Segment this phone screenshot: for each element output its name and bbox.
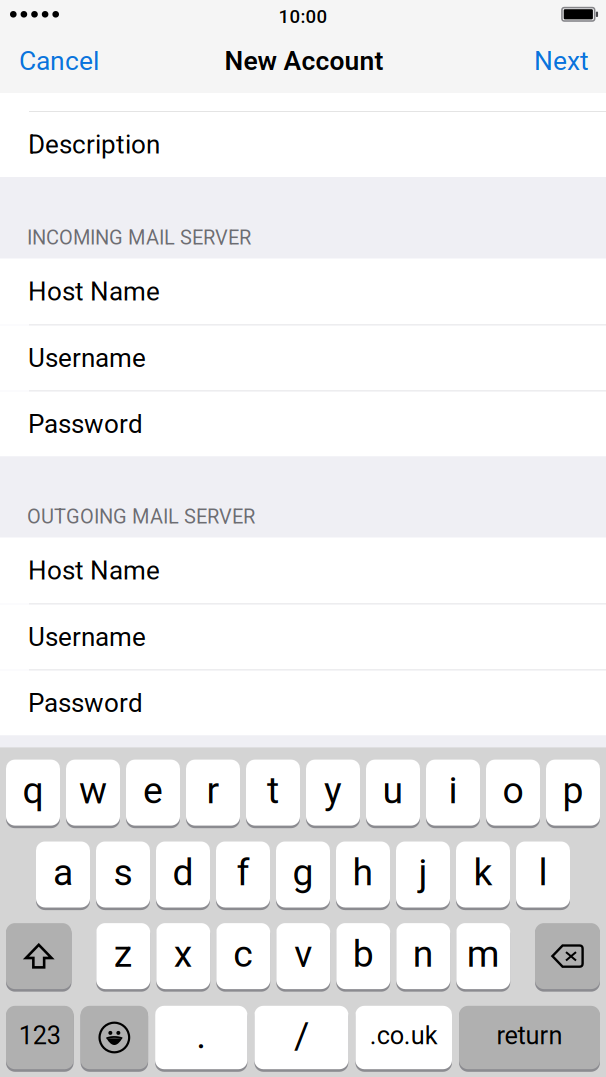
button[interactable]: .co.uk bbox=[355, 1005, 452, 1071]
button[interactable]: h bbox=[336, 841, 390, 909]
button[interactable]: g bbox=[276, 841, 330, 909]
button[interactable]: Host Name bbox=[0, 258, 606, 324]
button[interactable]: z bbox=[96, 922, 150, 991]
button[interactable]: Emoji bbox=[81, 1005, 148, 1071]
button[interactable]: k bbox=[456, 841, 510, 909]
staticText: .co.uk bbox=[370, 1021, 438, 1050]
staticText: x bbox=[174, 932, 193, 976]
staticText: k bbox=[473, 851, 492, 894]
staticText: f bbox=[236, 851, 249, 894]
staticText: t bbox=[267, 769, 279, 812]
staticText: h bbox=[352, 851, 373, 894]
button[interactable]: / bbox=[254, 1005, 348, 1071]
staticText: Host Name bbox=[28, 276, 160, 307]
staticText: o bbox=[502, 769, 523, 812]
button[interactable]: t bbox=[246, 759, 300, 827]
staticText: Username bbox=[28, 343, 146, 373]
staticText: INCOMING MAIL SERVER bbox=[27, 226, 251, 249]
staticText: p bbox=[562, 769, 583, 812]
staticText: Password bbox=[28, 688, 143, 718]
button[interactable]: Description bbox=[0, 111, 606, 177]
button[interactable]: Next bbox=[466, 33, 606, 93]
button[interactable]: f bbox=[216, 841, 270, 909]
staticText: Host Name bbox=[28, 555, 160, 586]
staticText: Description bbox=[28, 129, 160, 160]
staticText: OUTGOING MAIL SERVER bbox=[27, 505, 255, 528]
button[interactable]: p bbox=[546, 759, 600, 827]
staticText: s bbox=[113, 851, 132, 894]
button[interactable]: q bbox=[6, 759, 60, 827]
staticText: i bbox=[448, 769, 457, 812]
button[interactable]: Host Name bbox=[0, 537, 606, 603]
button[interactable]: return bbox=[459, 1005, 600, 1071]
staticText: Cancel bbox=[19, 45, 99, 76]
staticText: n bbox=[413, 932, 434, 976]
staticText: 10:00 bbox=[278, 6, 327, 27]
button[interactable]: w bbox=[66, 759, 120, 827]
button[interactable]: l bbox=[516, 841, 570, 909]
staticText: b bbox=[353, 932, 374, 976]
button[interactable]: m bbox=[456, 922, 510, 991]
button[interactable]: j bbox=[396, 841, 450, 909]
button[interactable]: d bbox=[156, 841, 210, 909]
staticText: / bbox=[294, 1014, 309, 1057]
button[interactable]: v bbox=[276, 922, 330, 991]
staticText: a bbox=[53, 851, 73, 894]
staticText: c bbox=[233, 932, 253, 976]
button[interactable]: x bbox=[156, 922, 210, 991]
button[interactable]: e bbox=[126, 759, 180, 827]
staticText: m bbox=[467, 932, 500, 976]
staticText: r bbox=[206, 769, 219, 812]
button[interactable]: Password bbox=[0, 669, 606, 735]
staticText: Username bbox=[28, 622, 146, 652]
staticText: g bbox=[292, 851, 313, 894]
staticText: l bbox=[538, 851, 547, 894]
staticText: d bbox=[172, 851, 193, 894]
button[interactable]: . bbox=[155, 1005, 247, 1071]
button[interactable]: Password bbox=[0, 390, 606, 456]
button[interactable]: Username bbox=[0, 324, 606, 390]
button[interactable]: a bbox=[36, 841, 90, 909]
staticText: v bbox=[294, 932, 312, 976]
staticText: q bbox=[22, 769, 43, 812]
button[interactable]: u bbox=[366, 759, 420, 827]
staticText: u bbox=[382, 769, 403, 812]
button[interactable]: s bbox=[96, 841, 150, 909]
staticText: Next bbox=[534, 45, 589, 76]
staticText: j bbox=[418, 851, 427, 894]
button[interactable]: Shift bbox=[6, 922, 71, 991]
button[interactable]: r bbox=[186, 759, 240, 827]
staticText: w bbox=[79, 769, 107, 812]
button[interactable]: i bbox=[426, 759, 480, 827]
staticText: Password bbox=[28, 409, 143, 439]
button[interactable]: 123 bbox=[6, 1005, 74, 1071]
staticText: return bbox=[496, 1021, 562, 1050]
staticText: e bbox=[143, 769, 163, 812]
staticText: z bbox=[114, 932, 133, 976]
staticText: . bbox=[196, 1014, 206, 1057]
staticText: New Account bbox=[224, 45, 383, 76]
staticText: y bbox=[324, 769, 342, 812]
button[interactable]: Delete bbox=[535, 922, 600, 991]
button[interactable]: n bbox=[396, 922, 450, 991]
button[interactable]: b bbox=[336, 922, 390, 991]
button[interactable]: c bbox=[216, 922, 270, 991]
button[interactable]: Username bbox=[0, 603, 606, 669]
button[interactable]: Cancel bbox=[0, 33, 150, 93]
staticText: 123 bbox=[19, 1021, 61, 1050]
button[interactable]: o bbox=[486, 759, 540, 827]
button[interactable]: y bbox=[306, 759, 360, 827]
